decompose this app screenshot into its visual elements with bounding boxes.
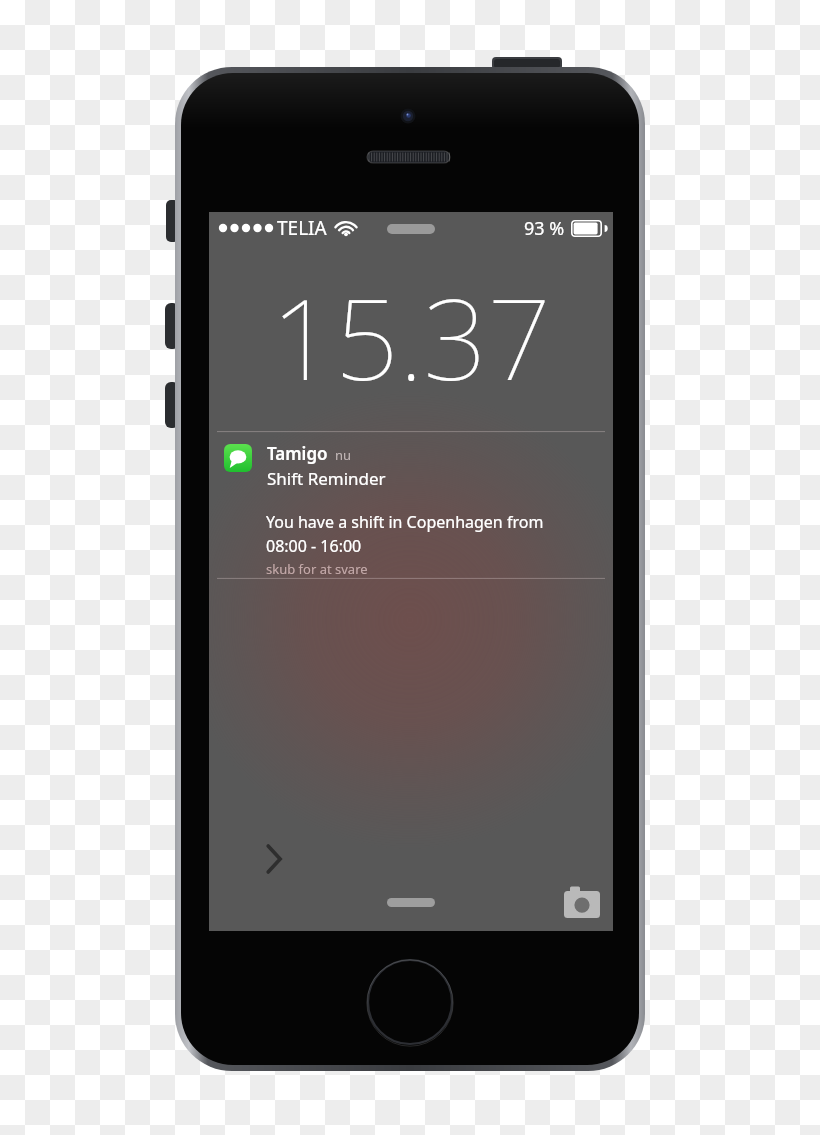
staticText: Shift Reminder — [267, 467, 386, 490]
staticText: 15.37 — [271, 260, 551, 413]
staticText: You have a shift in Copenhagen from — [266, 511, 544, 533]
staticText: Tamigo — [267, 442, 328, 465]
staticText: nu — [335, 446, 352, 464]
staticText: skub for at svare — [266, 560, 368, 578]
button[interactable]: Camera — [555, 878, 607, 924]
staticText: 93 % — [524, 216, 565, 241]
staticText: TELIA — [277, 215, 327, 241]
button[interactable]: Open notification — [253, 836, 299, 882]
button[interactable]: Tamigo — [209, 431, 613, 579]
staticText: 08:00 - 16:00 — [266, 535, 362, 557]
